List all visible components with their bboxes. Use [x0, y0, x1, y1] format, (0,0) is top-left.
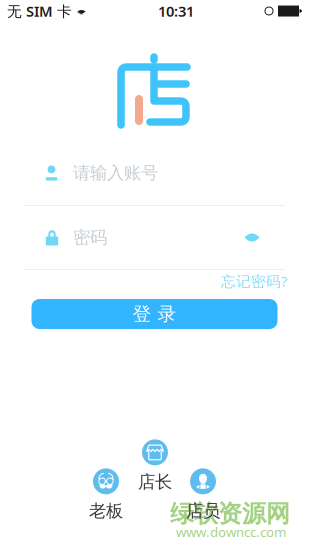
- button[interactable]: 店员: [176, 470, 230, 520]
- staticText: www.downcc.com: [176, 523, 286, 541]
- staticText: 密码: [73, 227, 107, 248]
- button[interactable]: 忘记密码?: [219, 270, 289, 292]
- staticText: 登 录: [132, 302, 176, 325]
- staticText: 老板: [89, 500, 123, 522]
- staticText: 店长: [138, 471, 172, 493]
- button[interactable]: 老板: [79, 470, 133, 520]
- button[interactable]: 店长: [128, 441, 182, 491]
- button[interactable]: 登 录: [31, 299, 277, 329]
- button[interactable]: 显示密码: [240, 225, 264, 249]
- staticText: 忘记密码?: [221, 271, 287, 291]
- staticText: 请输入账号: [73, 162, 158, 184]
- staticText: 绿软资源网: [170, 499, 290, 528]
- staticText: 无 SIM 卡: [7, 1, 72, 21]
- staticText: 店员: [186, 500, 220, 522]
- staticText: 10:31: [158, 1, 194, 21]
